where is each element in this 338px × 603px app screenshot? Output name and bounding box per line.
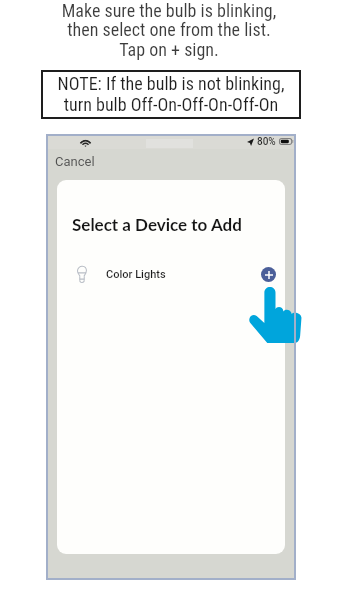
staticText: Color Lights <box>106 268 166 281</box>
staticText: 80% <box>257 136 276 147</box>
staticText: NOTE: If the bulb is not blinking, turn … <box>41 73 301 115</box>
button[interactable]: Cancel <box>50 151 106 171</box>
staticText: Cancel <box>55 154 95 169</box>
staticText: Make sure the bulb is blinking, then sel… <box>0 0 338 61</box>
button[interactable]: Add device <box>261 267 276 282</box>
button[interactable]: Color Lights <box>57 260 285 288</box>
staticText: Select a Device to Add <box>72 214 242 234</box>
